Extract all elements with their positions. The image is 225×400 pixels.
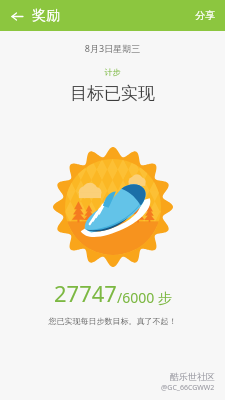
staticText: 分享 bbox=[195, 9, 215, 22]
staticText: 计步 bbox=[0, 67, 225, 77]
staticText: 8月3日星期三 bbox=[0, 42, 225, 54]
staticText: /6000 步 bbox=[117, 288, 172, 307]
staticText: 27747 bbox=[54, 278, 117, 308]
staticText: 目标已实现 bbox=[0, 83, 225, 104]
button[interactable]: Back bbox=[6, 5, 28, 27]
button[interactable]: 分享 bbox=[185, 3, 225, 28]
staticText: 您已实现每日步数目标。真了不起！ bbox=[0, 316, 225, 326]
staticText: 酷乐世社区 bbox=[170, 371, 215, 382]
staticText: 奖励 bbox=[32, 7, 60, 25]
staticText: @GC_66CGWW2 bbox=[161, 383, 215, 393]
